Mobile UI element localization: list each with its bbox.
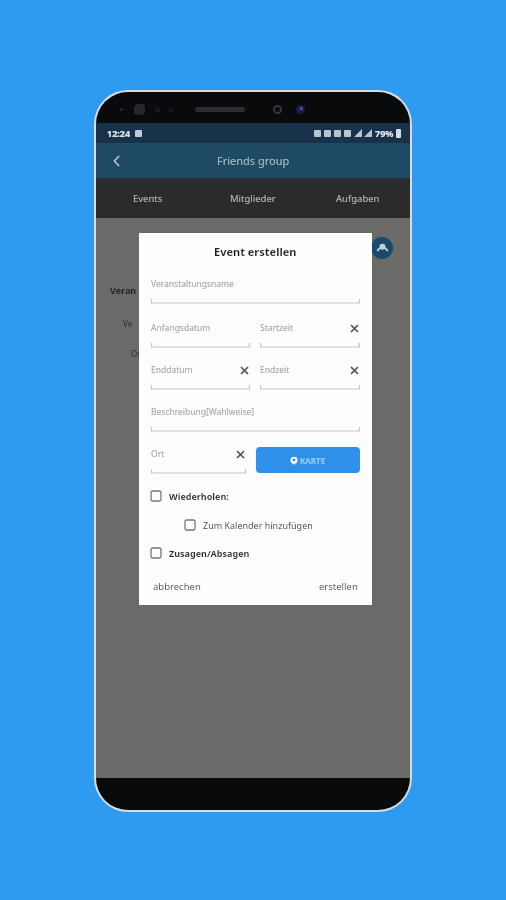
staticText: Event erstellen bbox=[214, 244, 297, 259]
staticText: Aufgaben bbox=[336, 192, 380, 205]
button[interactable]: Endzeit bbox=[260, 362, 360, 390]
button[interactable]: Anfangsdatum bbox=[151, 320, 250, 348]
staticText: 79% bbox=[375, 127, 394, 139]
staticText: Ort bbox=[151, 448, 237, 460]
staticText: Veran bbox=[110, 284, 137, 296]
staticText: abbrechen bbox=[153, 580, 201, 593]
staticText: Beschreibung[Wahlweise] bbox=[151, 406, 360, 418]
staticText: Or bbox=[131, 348, 141, 359]
staticText: Veranstaltungsname bbox=[151, 278, 360, 290]
button[interactable]: Enddatum bbox=[151, 362, 250, 390]
button[interactable]: erstellen bbox=[317, 578, 360, 595]
staticText: Events bbox=[133, 192, 163, 205]
button[interactable]: KARTE bbox=[256, 447, 360, 473]
staticText: Wiederholen: bbox=[169, 490, 229, 502]
staticText: Endzeit bbox=[260, 364, 351, 376]
staticText: Mitglieder bbox=[230, 192, 276, 205]
button[interactable]: Beschreibung[Wahlweise] bbox=[151, 404, 360, 432]
staticText: Enddatum bbox=[151, 364, 241, 376]
staticText: Ve bbox=[123, 318, 133, 329]
staticText: 12:24 bbox=[107, 127, 131, 139]
staticText: KARTE bbox=[300, 455, 326, 466]
staticText: Zusagen/Absagen bbox=[169, 547, 250, 559]
button[interactable]: Add member bbox=[371, 237, 393, 259]
staticText: Startzeit bbox=[260, 322, 351, 334]
button[interactable]: Wiederholen: bbox=[151, 490, 360, 502]
button[interactable]: Startzeit bbox=[260, 320, 360, 348]
staticText: Zum Kalender hinzufügen bbox=[203, 519, 313, 531]
staticText: erstellen bbox=[319, 580, 358, 593]
staticText: Anfangsdatum bbox=[151, 322, 250, 334]
button[interactable]: Veranstaltungsname bbox=[151, 276, 360, 304]
button[interactable]: Back bbox=[104, 148, 130, 174]
button[interactable]: Zusagen/Absagen bbox=[151, 547, 360, 559]
button[interactable]: Ort bbox=[151, 446, 246, 474]
button[interactable]: Events bbox=[96, 178, 200, 218]
button[interactable]: Aufgaben bbox=[305, 178, 410, 218]
button[interactable]: Zum Kalender hinzufügen bbox=[185, 519, 360, 531]
button[interactable]: Mitglieder bbox=[200, 178, 305, 218]
staticText: Friends group bbox=[217, 153, 290, 168]
button[interactable]: abbrechen bbox=[151, 578, 203, 595]
